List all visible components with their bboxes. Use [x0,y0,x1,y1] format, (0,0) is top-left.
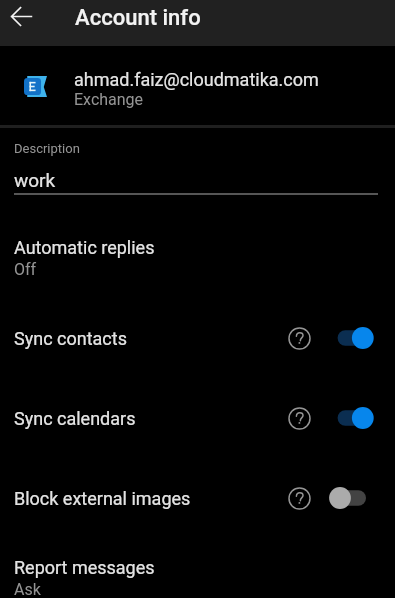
staticText: Automatic replies [14,237,155,258]
staticText: Sync calendars [14,408,136,429]
button[interactable]: Block external images [0,458,395,538]
staticText: Off [14,260,37,279]
staticText: Ask [14,580,41,598]
button[interactable]: Block external images off [329,482,374,514]
button[interactable]: Report messages [0,538,395,598]
staticText: Description [14,141,80,156]
button[interactable]: Sync calendars on [329,402,374,434]
button[interactable]: More information about Sync calendars [282,401,316,435]
staticText: Sync contacts [14,328,127,349]
button[interactable]: More information about Sync contacts [282,321,316,355]
button[interactable]: Sync contacts [0,298,395,378]
button[interactable]: More information about Block external im… [282,481,316,515]
staticText: work [14,169,56,191]
staticText: Report messages [14,557,155,578]
button[interactable]: Sync calendars [0,378,395,458]
button[interactable]: Description [0,141,395,195]
button[interactable]: ahmad.faiz@cloudmatika.com [0,49,395,129]
staticText: Exchange [74,90,144,109]
staticText: ahmad.faiz@cloudmatika.com [74,69,319,90]
staticText: Account info [75,5,201,31]
button[interactable]: Navigate up [0,0,42,32]
button[interactable]: Sync contacts on [329,322,374,354]
button[interactable]: Automatic replies [0,218,395,298]
staticText: Block external images [14,488,191,509]
